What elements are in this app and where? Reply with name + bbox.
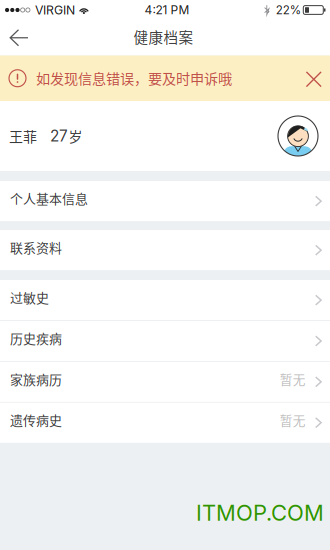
button[interactable]: 联系资料 xyxy=(0,230,330,270)
staticText: 暂无 xyxy=(280,370,306,388)
staticText: 遗传病史 xyxy=(10,410,62,429)
staticText: 联系资料 xyxy=(10,238,62,256)
button[interactable]: 历史疾病 xyxy=(0,321,330,361)
staticText: 22% xyxy=(276,3,301,17)
staticText: 历史疾病 xyxy=(10,329,62,347)
staticText: 27 xyxy=(50,127,68,145)
staticText: ITMOP.COM xyxy=(196,499,324,526)
button[interactable]: 遗传病史 xyxy=(0,403,330,443)
staticText: 过敏史 xyxy=(10,288,49,306)
button[interactable]: Back xyxy=(0,21,38,55)
staticText: 健康档案 xyxy=(133,26,193,47)
button[interactable]: 过敏史 xyxy=(0,280,330,320)
staticText: 岁 xyxy=(68,126,82,146)
staticText: 如发现信息错误，要及时申诉哦 xyxy=(36,67,232,88)
staticText: 个人基本信息 xyxy=(10,189,88,207)
button[interactable]: Dismiss xyxy=(300,66,325,90)
button[interactable]: 家族病历 xyxy=(0,362,330,402)
staticText: 家族病历 xyxy=(10,369,62,388)
staticText: 暂无 xyxy=(280,410,306,429)
staticText: 4:21 PM xyxy=(144,3,189,17)
button[interactable]: 个人基本信息 xyxy=(0,181,330,221)
staticText: VIRGIN xyxy=(35,3,75,17)
staticText: 王菲 xyxy=(9,126,37,146)
